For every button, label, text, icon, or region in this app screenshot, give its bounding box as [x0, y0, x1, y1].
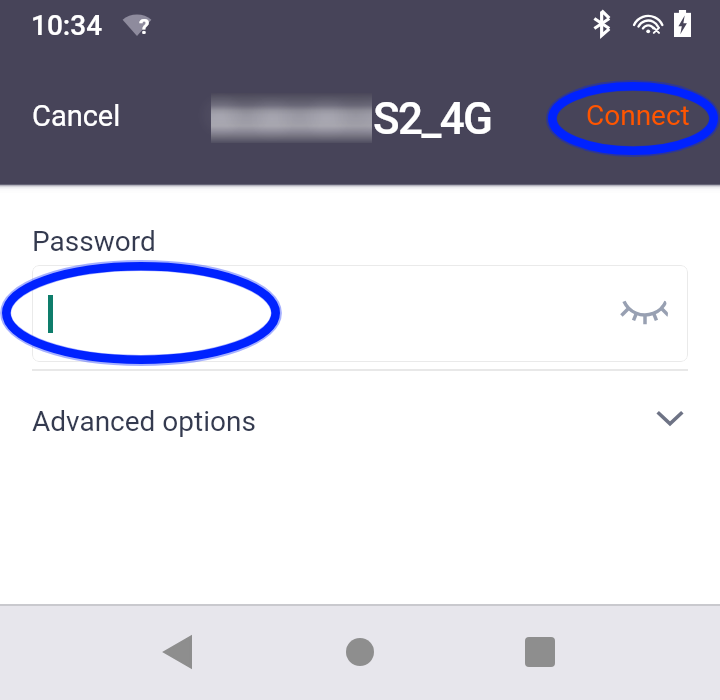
other: Wi-Fi disconnected: [631, 13, 661, 34]
staticText: Advanced options: [32, 405, 256, 438]
button[interactable]: Recent apps: [480, 606, 600, 700]
button[interactable]: Connect: [570, 87, 706, 144]
other: Bluetooth: [594, 10, 611, 37]
button[interactable]: Back: [118, 606, 238, 700]
staticText: Cancel: [32, 99, 121, 133]
button[interactable]: Show password: [32, 265, 688, 362]
staticText: Connect: [586, 99, 690, 132]
staticText: ?: [139, 15, 150, 40]
button[interactable]: Home: [300, 606, 420, 700]
button[interactable]: Show password: [596, 277, 668, 349]
staticText: S2_4G: [373, 93, 492, 145]
staticText: Password: [32, 225, 156, 258]
button[interactable]: Cancel: [16, 87, 137, 145]
button[interactable]: Advanced options: [0, 380, 720, 452]
other: Wi-Fi: no internet: [121, 10, 153, 38]
other: Battery charging: [674, 10, 691, 37]
staticText: 10:34: [31, 9, 103, 42]
